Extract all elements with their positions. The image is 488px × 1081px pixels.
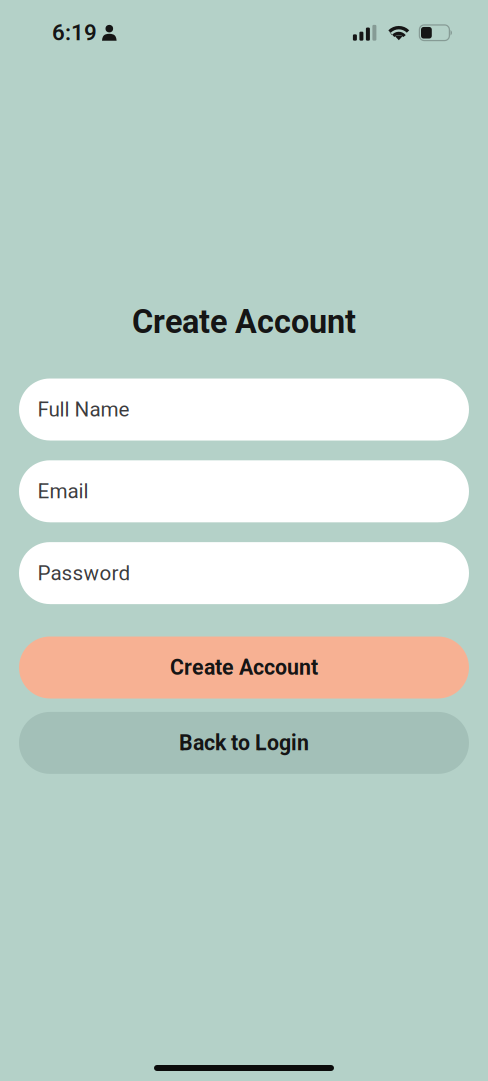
staticText: Full Name — [37, 397, 129, 422]
button[interactable]: Password — [19, 542, 469, 604]
button[interactable]: Full Name — [19, 378, 469, 440]
staticText: 6:19 — [52, 20, 97, 46]
button[interactable]: Create Account — [19, 636, 469, 698]
button[interactable]: Email — [19, 460, 469, 522]
staticText: Email — [37, 479, 88, 503]
staticText: Back to Login — [179, 730, 309, 755]
staticText: Password — [37, 561, 130, 585]
staticText: Create Account — [132, 303, 356, 341]
button[interactable]: Back to Login — [19, 712, 469, 774]
staticText: Create Account — [170, 655, 318, 680]
